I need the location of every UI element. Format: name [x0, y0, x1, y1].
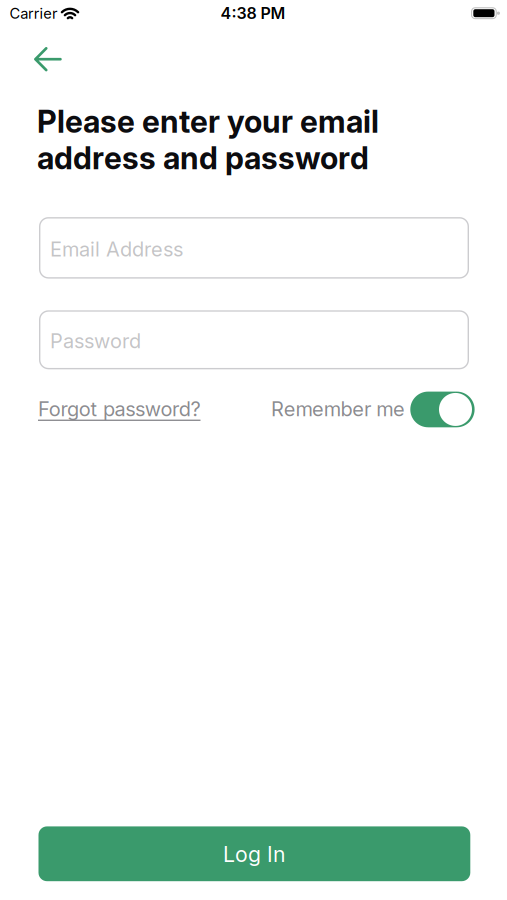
- staticText: address and password: [37, 140, 369, 176]
- button[interactable]: Remember me: [410, 392, 475, 427]
- staticText: 4:38 PM: [220, 4, 285, 23]
- staticText: Remember me: [271, 397, 405, 421]
- button[interactable]: Back: [27, 40, 68, 78]
- staticText: Log In: [223, 842, 286, 867]
- button[interactable]: Forgot password?: [38, 394, 258, 424]
- staticText: Email Address: [50, 237, 183, 261]
- staticText: Please enter your email: [37, 103, 379, 140]
- staticText: Password: [50, 329, 141, 353]
- staticText: Forgot password?: [38, 397, 200, 421]
- button[interactable]: Log In: [38, 826, 470, 881]
- staticText: Carrier: [9, 5, 58, 22]
